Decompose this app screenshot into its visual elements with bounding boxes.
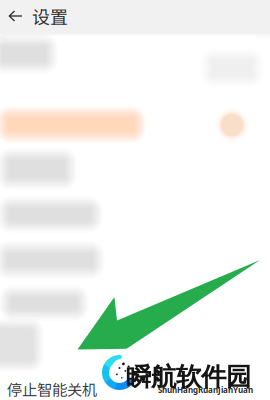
staticText: 瞬航软件园	[126, 361, 251, 393]
staticText: 停止智能关机	[7, 378, 97, 400]
staticText: ShunHangRuanJianYuan	[158, 384, 253, 395]
staticText: 设置	[32, 3, 68, 29]
button[interactable]: Back	[8, 8, 23, 23]
